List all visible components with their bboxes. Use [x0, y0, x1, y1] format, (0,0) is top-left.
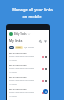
staticText: https://example.com/page: [9, 55, 34, 58]
staticText: on mobile: [22, 14, 42, 19]
staticText: 12 clicks: [9, 83, 17, 86]
button[interactable]: Search: [38, 39, 42, 43]
button[interactable]: bit.ly/short-link: [7, 50, 49, 62]
button[interactable]: All: [10, 46, 13, 49]
button[interactable]: Create new link: [43, 89, 48, 94]
staticText: 12 clicks: [9, 59, 17, 62]
staticText: Bitly Tools: [14, 32, 27, 36]
staticText: My links: [9, 38, 23, 43]
button[interactable]: Links: [16, 46, 22, 49]
staticText: https://example.com/page: [9, 79, 34, 82]
staticText: https://example.com/page: [9, 67, 34, 70]
staticText: https://example.com/page: [9, 91, 34, 94]
staticText: bit.ly/short-link: [9, 51, 27, 54]
button[interactable]: Filter: [43, 39, 47, 43]
staticText: QR Codes: [24, 46, 34, 49]
staticText: bit.ly/short-link: [9, 75, 27, 78]
staticText: 12 clicks: [9, 71, 17, 74]
staticText: bit.ly/short-link: [9, 87, 27, 90]
button[interactable]: bit.ly/short-link: [7, 86, 49, 98]
button[interactable]: Bitly Tools: [7, 30, 49, 37]
button[interactable]: bit.ly/short-link: [7, 74, 49, 86]
staticText: Manage all your links: [12, 7, 53, 12]
staticText: Links: [16, 46, 22, 49]
staticText: All: [10, 46, 13, 49]
staticText: 12 clicks: [9, 95, 17, 98]
staticText: bit.ly/short-link: [9, 63, 27, 66]
button[interactable]: bit.ly/short-link: [7, 62, 49, 74]
